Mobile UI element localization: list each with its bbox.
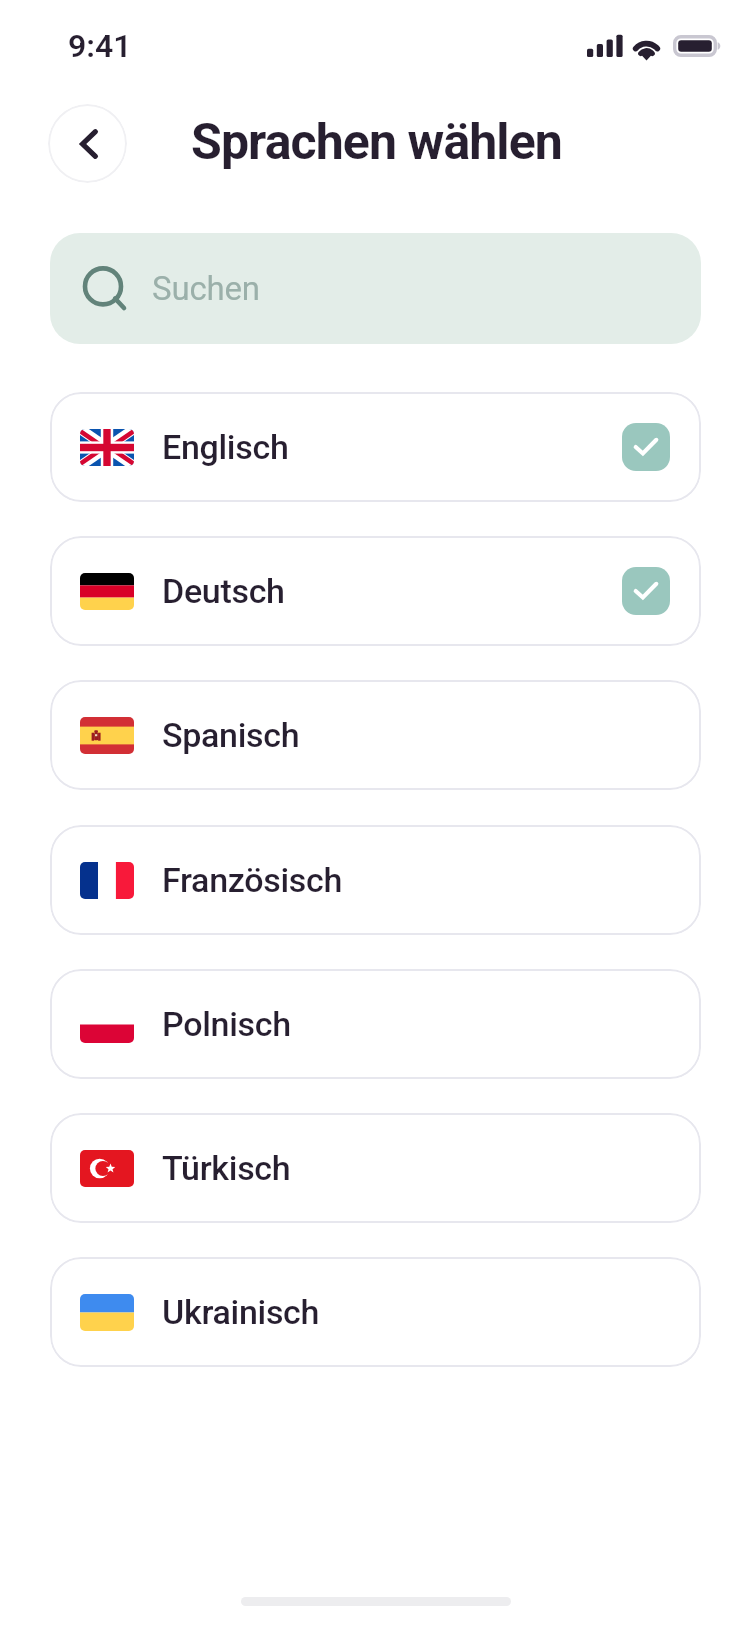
staticText: Französisch bbox=[162, 860, 343, 900]
staticText: Polnisch bbox=[162, 1004, 291, 1044]
button[interactable]: Polnisch bbox=[50, 969, 701, 1079]
staticText: Spanisch bbox=[162, 715, 300, 755]
staticText: Sprachen wählen bbox=[191, 113, 562, 172]
button[interactable]: Ukrainisch bbox=[50, 1257, 701, 1367]
staticText: Suchen bbox=[152, 269, 260, 308]
staticText: Ukrainisch bbox=[162, 1292, 320, 1332]
button[interactable]: Suchen bbox=[50, 233, 701, 344]
staticText: 9:41 bbox=[68, 27, 132, 65]
staticText: Deutsch bbox=[162, 571, 285, 611]
staticText: Englisch bbox=[162, 427, 289, 467]
button[interactable]: Spanisch bbox=[50, 680, 701, 790]
button[interactable]: Deutsch bbox=[50, 536, 701, 646]
button[interactable]: Zurück bbox=[48, 104, 127, 183]
button[interactable]: Englisch bbox=[50, 392, 701, 502]
button[interactable]: Türkisch bbox=[50, 1113, 701, 1223]
button[interactable]: Französisch bbox=[50, 825, 701, 935]
staticText: Türkisch bbox=[162, 1148, 291, 1188]
